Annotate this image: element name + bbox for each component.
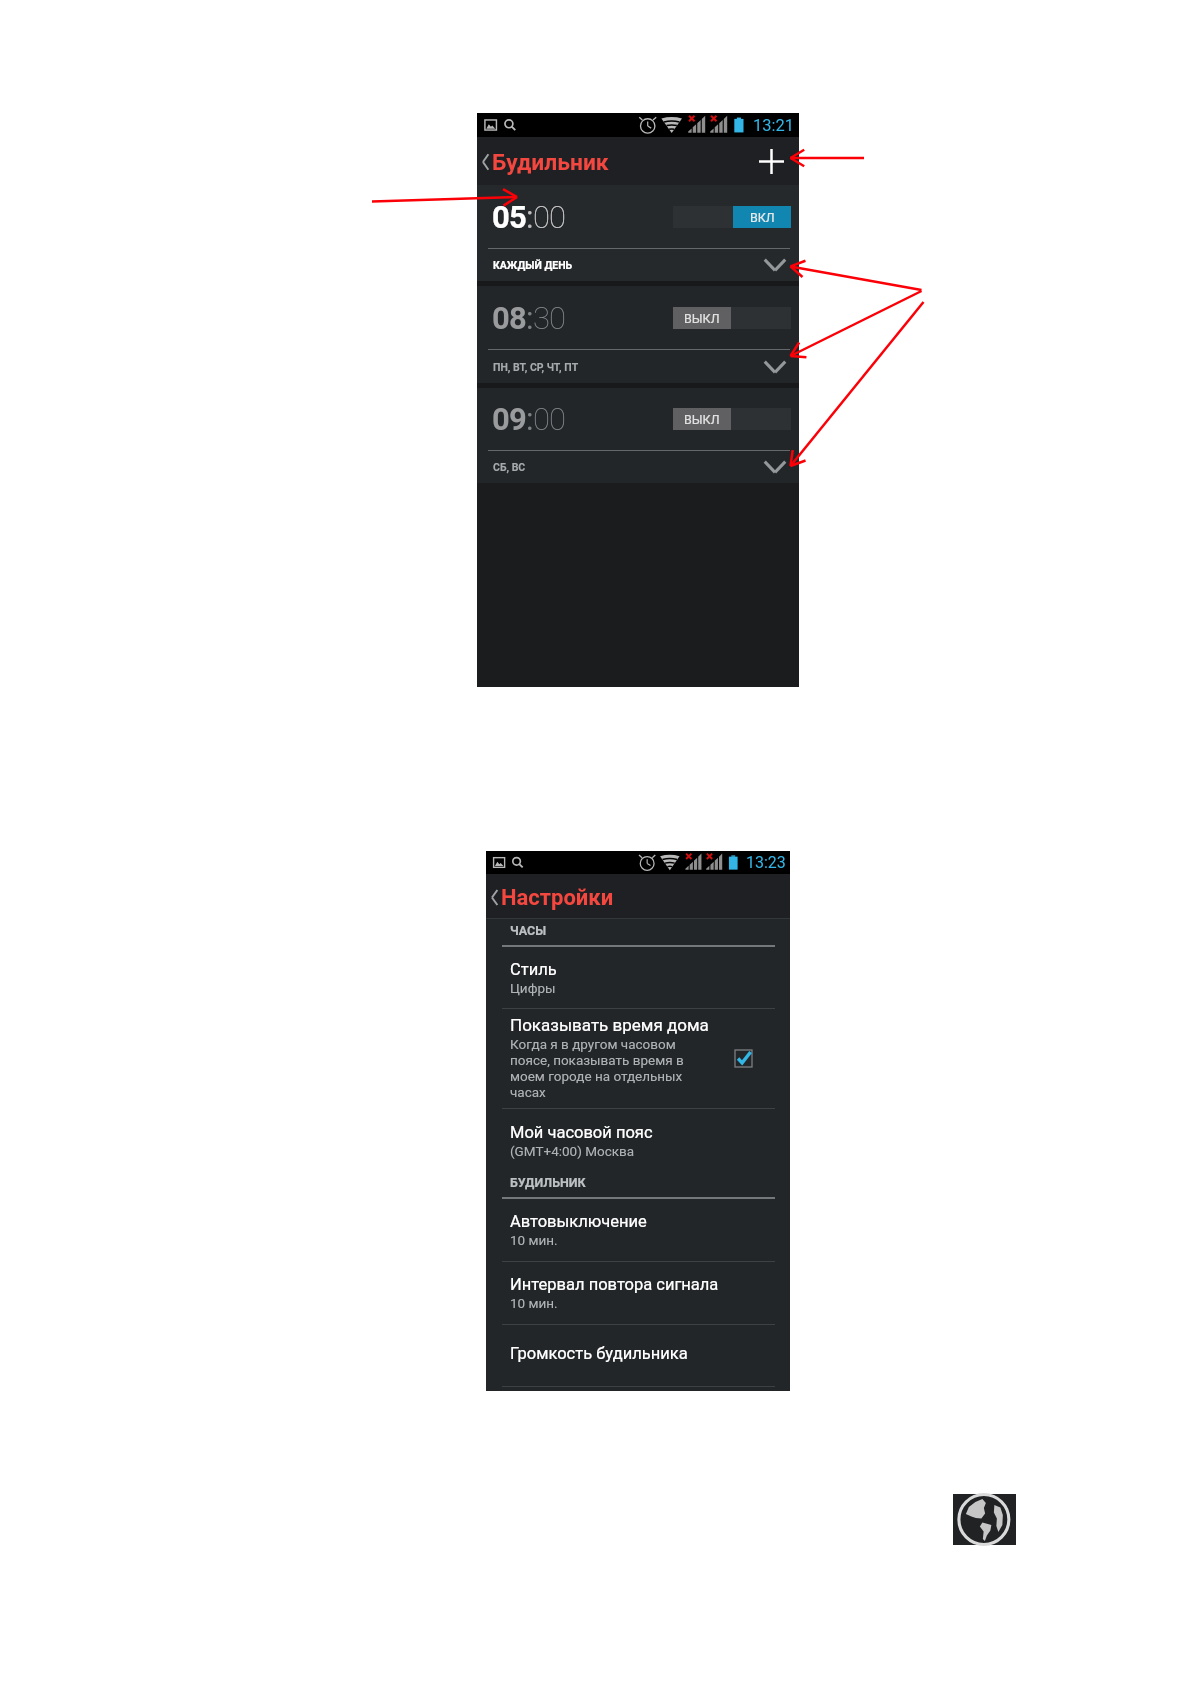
button[interactable]: 09	[477, 388, 799, 483]
staticText: 13:23	[746, 853, 786, 872]
button[interactable]: Будильник	[477, 148, 615, 175]
button[interactable]: Alarm on	[673, 206, 791, 228]
staticText: Когда я в другом часовом поясе, показыва…	[510, 1036, 690, 1100]
staticText: ЧАСЫ	[510, 923, 547, 938]
button[interactable]: Show home time checkbox	[735, 1050, 752, 1067]
staticText: 08	[492, 300, 526, 336]
staticText: 00	[533, 401, 566, 437]
staticText: :	[526, 401, 533, 437]
button[interactable]: Alarm off	[673, 307, 791, 329]
staticText: :	[526, 199, 533, 235]
button[interactable]: Интервал повтора сигнала	[486, 1262, 790, 1324]
button[interactable]: 05	[477, 185, 799, 281]
staticText: Интервал повтора сигнала	[510, 1275, 719, 1294]
staticText: :	[526, 300, 533, 336]
staticText: Показывать время дома	[510, 1015, 709, 1035]
staticText: Громкость будильника	[510, 1344, 688, 1363]
staticText: 13:21	[753, 116, 795, 135]
staticText: Автовыключение	[510, 1212, 647, 1231]
button[interactable]: Громкость будильника	[486, 1325, 790, 1386]
button[interactable]: Add alarm	[758, 148, 784, 174]
button[interactable]: Стиль	[486, 947, 790, 1008]
staticText: ВЫКЛ	[684, 412, 720, 427]
button[interactable]: Показывать время дома	[486, 1009, 790, 1108]
staticText: Цифры	[510, 980, 556, 996]
staticText: 10 мин.	[510, 1232, 558, 1248]
button[interactable]: 08	[477, 286, 799, 383]
staticText: ПН, ВТ, СР, ЧТ, ПТ	[493, 361, 579, 373]
button[interactable]: Автовыключение	[486, 1199, 790, 1261]
staticText: 00	[533, 199, 566, 235]
staticText: Будильник	[492, 149, 609, 176]
staticText: СБ, ВС	[493, 461, 526, 473]
staticText: 10 мин.	[510, 1295, 558, 1311]
staticText: Мой часовой пояс	[510, 1123, 653, 1142]
staticText: 30	[533, 300, 566, 336]
staticText: 05	[492, 199, 526, 235]
staticText: ВКЛ	[750, 210, 775, 225]
staticText: 09	[492, 401, 526, 437]
button[interactable]: Настройки	[486, 884, 620, 910]
staticText: ВЫКЛ	[684, 311, 720, 326]
button[interactable]: Мой часовой пояс	[486, 1109, 790, 1171]
staticText: (GMT+4:00) Москва	[510, 1143, 635, 1159]
staticText: КАЖДЫЙ ДЕНЬ	[493, 259, 573, 271]
staticText: Настройки	[501, 885, 614, 911]
button[interactable]: Alarm off	[673, 408, 791, 430]
staticText: БУДИЛЬНИК	[510, 1175, 586, 1190]
staticText: Стиль	[510, 960, 557, 979]
